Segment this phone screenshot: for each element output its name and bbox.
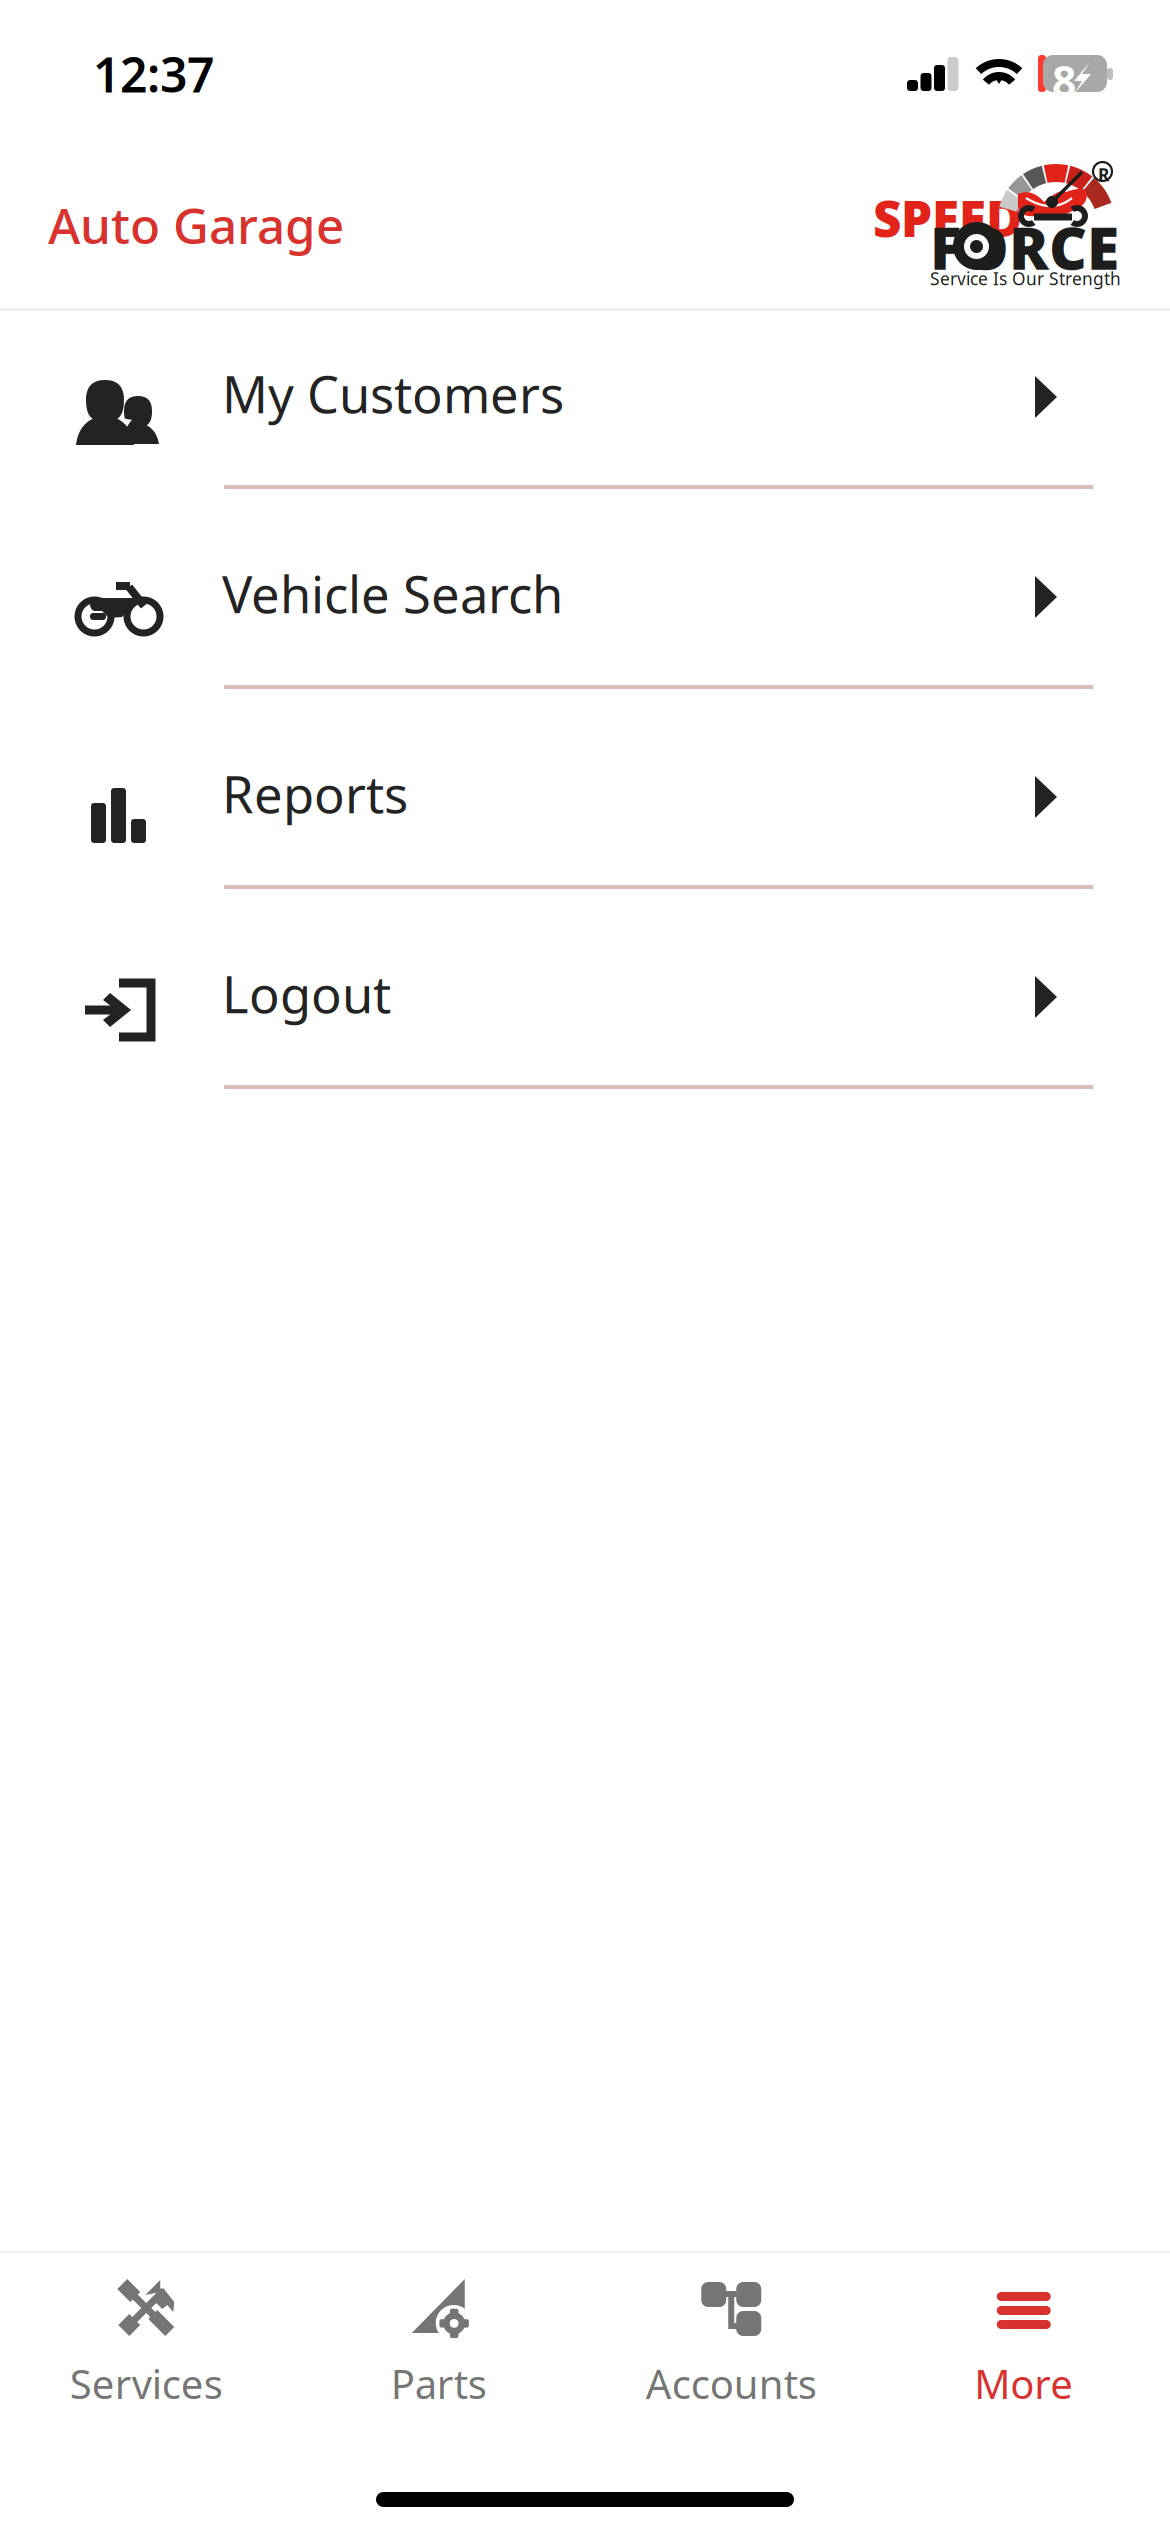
staticText: More (974, 2357, 1073, 2410)
staticText: 12:37 (93, 42, 214, 106)
staticText: Service Is Our Strength (930, 267, 1121, 290)
button[interactable]: Services (0, 2253, 292, 2423)
staticText: R (1098, 163, 1109, 186)
staticText: Services (70, 2357, 223, 2410)
staticText: Auto Garage (48, 192, 344, 257)
staticText: Parts (391, 2357, 487, 2410)
button[interactable]: Logout (0, 911, 1170, 1111)
staticText: FORCE (930, 208, 1119, 286)
button[interactable]: Vehicle Search (0, 511, 1170, 711)
button[interactable]: Accounts (585, 2253, 877, 2423)
staticText: Accounts (646, 2357, 817, 2410)
button[interactable]: Reports (0, 711, 1170, 911)
button[interactable]: More (877, 2253, 1170, 2423)
staticText: SPEED (873, 185, 1022, 250)
staticText: Vehicle Search (222, 560, 563, 627)
staticText: My Customers (222, 360, 564, 427)
button[interactable]: Parts (292, 2253, 585, 2423)
button[interactable]: My Customers (0, 311, 1170, 511)
staticText: 8 (1052, 52, 1076, 109)
staticText: Logout (222, 960, 391, 1027)
staticText: Reports (222, 760, 408, 827)
